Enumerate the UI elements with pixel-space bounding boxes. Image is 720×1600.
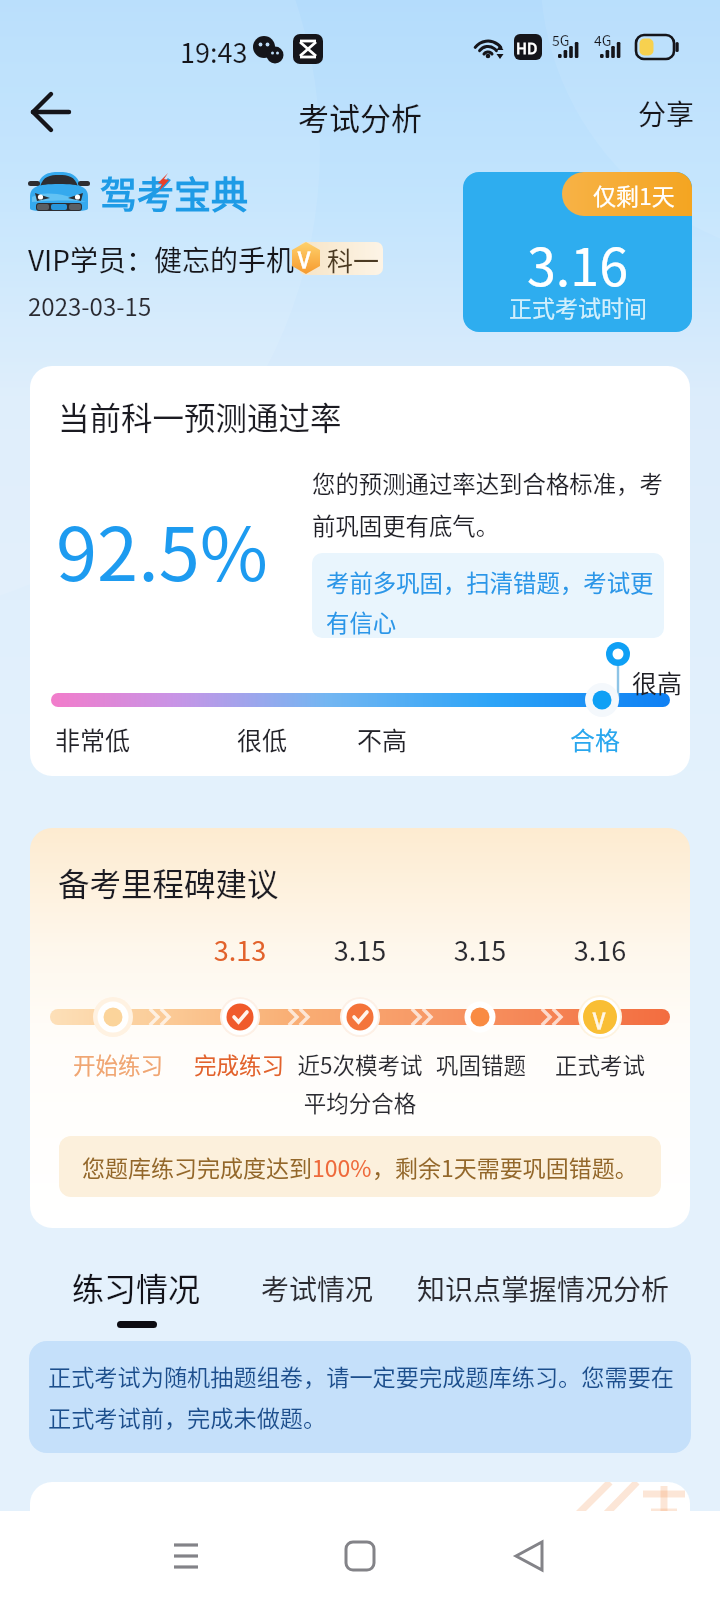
button[interactable]: 知识点掌握情况分析	[417, 1268, 670, 1309]
staticText: 当前科一预测通过率	[58, 393, 342, 439]
staticText: 平均分合格	[270, 1086, 450, 1119]
button[interactable]: 练习情况	[72, 1264, 201, 1328]
staticText: 3.13	[180, 930, 300, 969]
staticText: 很高	[632, 664, 683, 700]
staticText: 正式考试为随机抽题组卷，请一定要完成题库练习。您需要在 正式考试前，完成未做题。	[48, 1359, 675, 1434]
staticText: 3.15	[300, 930, 420, 969]
button[interactable]: 仅剩1天	[463, 172, 692, 332]
staticText: 开始练习	[30, 1048, 208, 1081]
staticText: 驾考宝典	[100, 166, 248, 220]
staticText: ，剩余1天需要巩固错题。	[372, 1150, 638, 1183]
staticText: 您题库练习完成度达到	[82, 1150, 312, 1183]
staticText: V	[593, 1005, 606, 1035]
staticText: HD	[516, 37, 538, 59]
staticText: 考试分析	[298, 94, 422, 139]
staticText: 3.16	[540, 930, 660, 969]
staticText: 合格	[570, 721, 621, 757]
button[interactable]: Recent apps	[150, 1518, 222, 1590]
staticText: 2023-03-15	[28, 288, 152, 323]
staticText: 100%	[312, 1150, 372, 1183]
staticText: 很低	[237, 721, 288, 757]
staticText: 您的预测通过率达到合格标准，考 前巩固更有底气。	[312, 466, 663, 541]
staticText: 巩固错题	[391, 1048, 571, 1081]
button[interactable]: Back	[18, 80, 84, 146]
staticText: 不高	[357, 721, 408, 757]
button[interactable]: 科一	[299, 242, 383, 275]
staticText: 19:43	[180, 32, 248, 71]
button[interactable]: Back	[494, 1518, 566, 1590]
staticText: 练习情况	[72, 1264, 201, 1310]
button[interactable]: Home	[324, 1518, 396, 1590]
button[interactable]: 分享	[624, 84, 709, 143]
staticText: 备考里程碑建议	[58, 859, 279, 905]
staticText: 4G	[594, 30, 612, 50]
staticText: 正式考试	[510, 1048, 690, 1081]
staticText: 分享	[638, 93, 695, 134]
staticText: 正式考试时间	[509, 290, 647, 323]
staticText: 92.5%	[56, 495, 268, 602]
staticText: 考前多巩固，扫清错题，考试更 有信心	[326, 565, 654, 638]
staticText: V	[298, 244, 311, 274]
staticText: 知识点掌握情况分析	[417, 1268, 670, 1309]
staticText: 3.15	[420, 930, 540, 969]
staticText: VIP学员：健忘的手机	[28, 239, 295, 280]
staticText: 科一	[327, 242, 380, 274]
staticText: 近5次模考试	[270, 1048, 450, 1081]
staticText: 3.16	[527, 226, 629, 301]
staticText: 非常低	[55, 721, 131, 757]
staticText: 5G	[552, 30, 570, 50]
staticText: 完成练习	[149, 1048, 329, 1081]
staticText: 考试情况	[261, 1268, 374, 1309]
staticText: 仅剩1天	[593, 178, 675, 211]
button[interactable]: 考试情况	[261, 1268, 374, 1309]
